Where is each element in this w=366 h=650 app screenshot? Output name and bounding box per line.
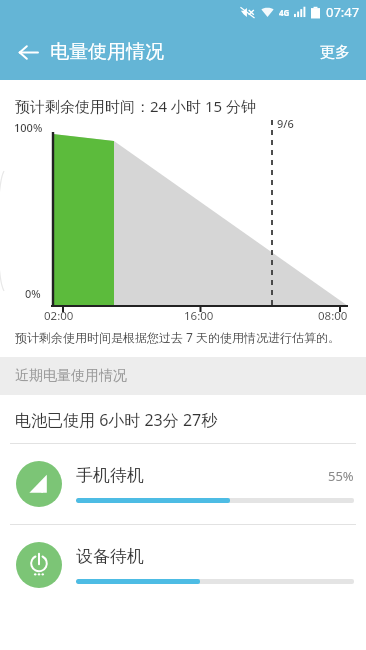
button[interactable]: 更多: [304, 29, 366, 76]
staticText: 07:47: [326, 3, 360, 21]
staticText: 55%: [328, 467, 354, 485]
staticText: 近期电量使用情况: [15, 367, 127, 385]
staticText: 设备待机: [76, 546, 354, 567]
staticText: 更多: [320, 43, 350, 62]
staticText: 16:00: [184, 308, 214, 324]
staticText: 电池已使用 6小时 23分 27秒: [15, 409, 218, 431]
staticText: 预计剩余使用时间是根据您过去 7 天的使用情况进行估算的。: [15, 329, 341, 345]
staticText: 0%: [25, 286, 41, 301]
staticText: 手机待机: [76, 465, 328, 486]
button[interactable]: Back: [6, 30, 50, 74]
staticText: 4G: [279, 7, 290, 18]
staticText: 9/6: [277, 116, 294, 131]
button[interactable]: 手机待机: [0, 444, 366, 524]
staticText: 08:00: [318, 308, 348, 324]
staticText: 100%: [14, 120, 43, 135]
staticText: 02:00: [44, 308, 74, 324]
button[interactable]: 设备待机: [0, 525, 366, 605]
staticText: 预计剩余使用时间：24 小时 15 分钟: [15, 96, 257, 116]
staticText: 电量使用情况: [50, 40, 164, 64]
